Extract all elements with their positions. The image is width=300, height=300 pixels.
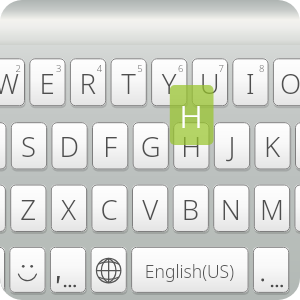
button[interactable]: [0, 0, 300, 300]
